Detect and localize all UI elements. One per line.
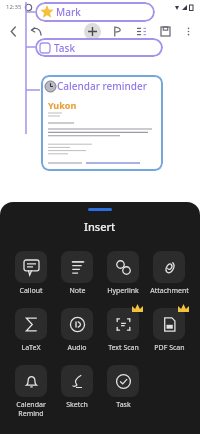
button[interactable]: Callout (15, 251, 47, 283)
button[interactable]: Hyperlink (107, 251, 139, 283)
staticText: Hyperlink (107, 286, 139, 296)
staticText: Yukon (48, 99, 77, 111)
staticText: 12:35 (6, 3, 22, 11)
staticText: Audio (67, 343, 87, 353)
button[interactable]: Task (35, 38, 163, 57)
button[interactable]: Outline (134, 24, 149, 39)
button[interactable]: Note (61, 251, 93, 283)
staticText: Text Scan (108, 343, 139, 353)
button[interactable]: Attachment (153, 251, 185, 283)
staticText: LaTeX (21, 343, 41, 353)
button[interactable]: Task (107, 365, 139, 397)
button[interactable]: Back (5, 23, 21, 39)
staticText: Sketch (66, 400, 88, 410)
button[interactable]: Undo (28, 23, 44, 39)
button[interactable]: Calendar Remind (15, 365, 47, 397)
button[interactable]: Mark (35, 2, 155, 22)
button[interactable]: Calendar reminder (41, 75, 163, 171)
staticText: Mark (56, 5, 81, 19)
staticText: Insert (84, 219, 116, 234)
button[interactable]: Sketch (61, 365, 93, 397)
button[interactable]: PDF Scan (153, 308, 185, 340)
button[interactable]: Pen (110, 24, 125, 39)
staticText: Callout (19, 286, 43, 296)
button[interactable]: More options (181, 24, 195, 38)
button[interactable]: Text Scan (107, 308, 139, 340)
staticText: Task (54, 41, 75, 55)
staticText: PDF Scan (154, 343, 185, 353)
staticText: Attachment (150, 286, 189, 296)
button[interactable]: LaTeX (15, 308, 47, 340)
staticText: Note (69, 286, 86, 296)
staticText: Calendar Remind (16, 400, 46, 418)
button[interactable]: Save (158, 24, 173, 39)
button[interactable]: Add (84, 23, 101, 40)
staticText: Task (116, 400, 131, 410)
button[interactable]: Audio (61, 308, 93, 340)
staticText: Calendar reminder (57, 79, 147, 93)
